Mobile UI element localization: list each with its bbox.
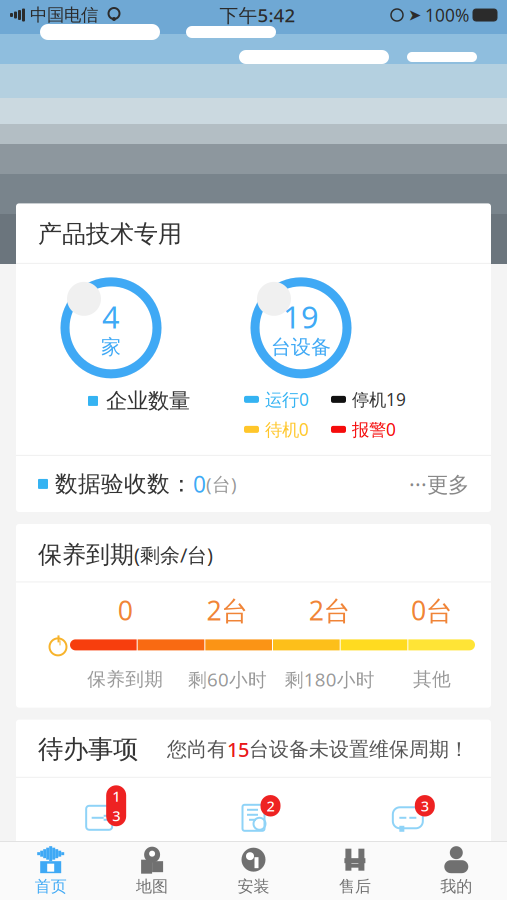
staticText: 剩60小时	[188, 667, 267, 692]
staticText: 0	[193, 469, 206, 499]
button[interactable]: 地图	[101, 840, 203, 900]
staticText: ➤	[408, 6, 421, 24]
staticText: 报警0	[352, 418, 396, 441]
staticText: 运行0	[265, 388, 309, 411]
staticText: 13	[112, 786, 120, 825]
staticText: 下午5:42	[219, 3, 295, 27]
button[interactable]: 3	[331, 794, 485, 878]
button[interactable]: 13	[22, 794, 176, 878]
staticText: 台设备未设置维保周期！	[249, 737, 469, 761]
staticText: 台设备	[271, 335, 331, 359]
staticText: 产品技术专用	[38, 219, 182, 249]
staticText: 您尚有	[167, 737, 227, 761]
staticText: 2台	[309, 592, 351, 628]
staticText: 售后	[339, 877, 371, 896]
staticText: 中国电信	[25, 4, 98, 26]
staticText: 0台	[411, 592, 453, 628]
button[interactable]: 数据验收数：	[16, 456, 491, 512]
button[interactable]: 首页	[0, 840, 101, 900]
staticText: 剩180小时	[285, 667, 375, 692]
staticText: 15	[227, 736, 249, 762]
staticText: 停机19	[352, 388, 406, 411]
staticText: 其他	[413, 668, 451, 691]
staticText: 安装	[237, 877, 269, 896]
staticText: 待办事项	[38, 734, 138, 765]
button[interactable]: 安装	[203, 840, 304, 900]
staticText: 2	[266, 796, 274, 815]
staticText: 0	[118, 592, 133, 628]
staticText: 保养到期	[38, 540, 134, 569]
staticText: (台)	[206, 471, 237, 496]
button[interactable]: 我的	[406, 840, 507, 900]
staticText: 我的	[440, 877, 472, 896]
button[interactable]: 售后	[304, 840, 406, 900]
staticText: ···更多	[409, 470, 469, 498]
staticText: 企业数量	[106, 388, 190, 414]
staticText: (剩余/台)	[134, 541, 213, 568]
staticText: 地图	[136, 877, 168, 896]
staticText: 19	[283, 296, 319, 337]
button[interactable]: 2	[176, 794, 331, 878]
staticText: 待机0	[265, 418, 309, 441]
staticText: 100%	[425, 3, 469, 26]
staticText: 首页	[35, 877, 67, 896]
staticText: 家	[101, 335, 121, 359]
staticText: 3	[421, 796, 429, 815]
staticText: 4	[102, 296, 120, 337]
staticText: 待维修	[219, 846, 288, 874]
staticText: 保养到期	[87, 668, 163, 691]
staticText: 数据验收数：	[48, 470, 193, 498]
staticText: 2台	[206, 592, 248, 628]
